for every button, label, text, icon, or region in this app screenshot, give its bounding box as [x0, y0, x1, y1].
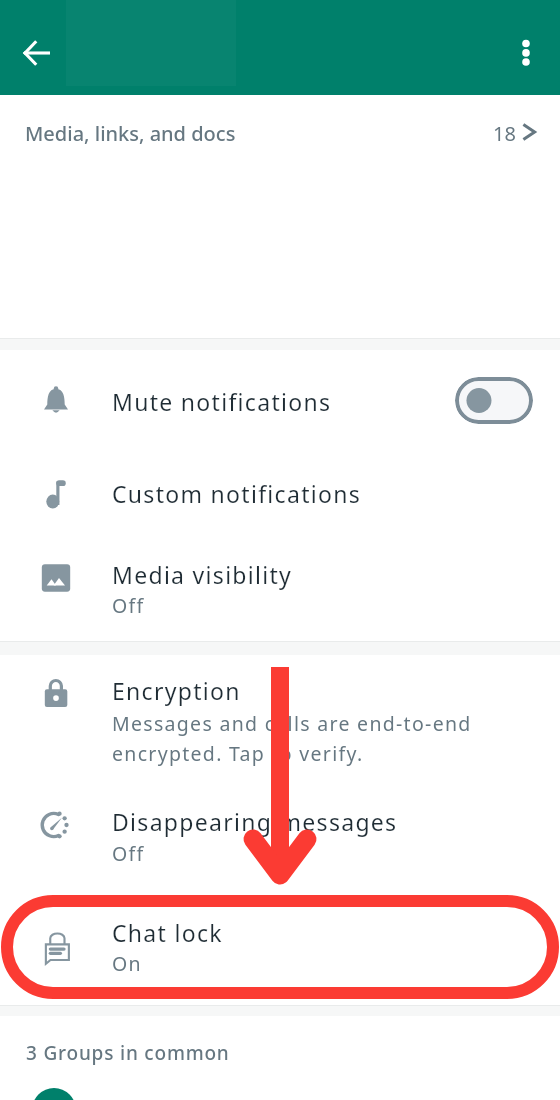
staticText: On: [112, 950, 142, 977]
button[interactable]: Custom notifications: [0, 452, 560, 524]
staticText: Off: [112, 840, 145, 867]
staticText: Messages and calls are end-to-end encryp…: [112, 710, 472, 766]
staticText: Disappearing messages: [112, 806, 398, 837]
staticText: 3 Groups in common: [26, 1040, 230, 1066]
button[interactable]: Disappearing messages: [0, 789, 560, 881]
staticText: Encryption: [112, 675, 241, 706]
staticText: Media visibility: [112, 559, 293, 590]
button[interactable]: Encryption: [0, 661, 560, 779]
button[interactable]: Chat lock: [0, 898, 560, 994]
button[interactable]: More options: [502, 29, 550, 77]
staticText: Custom notifications: [112, 478, 362, 509]
button[interactable]: Media visibility: [0, 535, 560, 627]
staticText: Media, links, and docs: [25, 120, 236, 147]
button[interactable]: Mute notifications toggle: [455, 377, 533, 424]
staticText: 18: [493, 120, 516, 147]
staticText: Off: [112, 592, 145, 619]
button[interactable]: Media, links, and docs: [0, 96, 560, 176]
button[interactable]: Back: [13, 29, 61, 77]
button[interactable]: Mute notifications: [0, 358, 560, 444]
staticText: Mute notifications: [112, 386, 332, 417]
staticText: Chat lock: [112, 917, 223, 948]
